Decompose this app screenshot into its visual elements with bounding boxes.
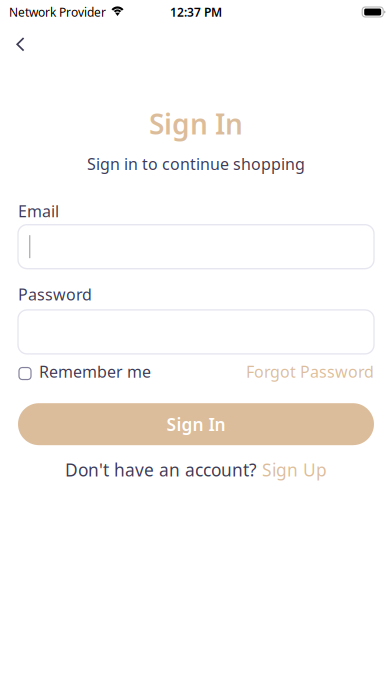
button[interactable]: Sign In (18, 403, 374, 445)
staticText: Don't have an account? (65, 458, 257, 481)
staticText: Password (18, 284, 92, 305)
button[interactable]: Sign Up (262, 458, 327, 481)
staticText: Sign In (149, 105, 243, 142)
button[interactable]: Forgot Password (246, 361, 374, 382)
staticText: Email (18, 200, 59, 222)
staticText: Remember me (39, 361, 151, 382)
staticText: Forgot Password (246, 361, 374, 382)
staticText: Sign In (166, 413, 225, 436)
button[interactable]: Back (0, 22, 40, 58)
staticText: Sign Up (262, 458, 327, 481)
staticText: 12:37 PM (170, 4, 222, 20)
button[interactable]: Password (18, 310, 374, 354)
staticText: Sign in to continue shopping (87, 153, 305, 174)
button[interactable]: Email (18, 225, 374, 269)
staticText: Network Provider (9, 4, 106, 20)
button[interactable]: Remember me (18, 361, 151, 382)
